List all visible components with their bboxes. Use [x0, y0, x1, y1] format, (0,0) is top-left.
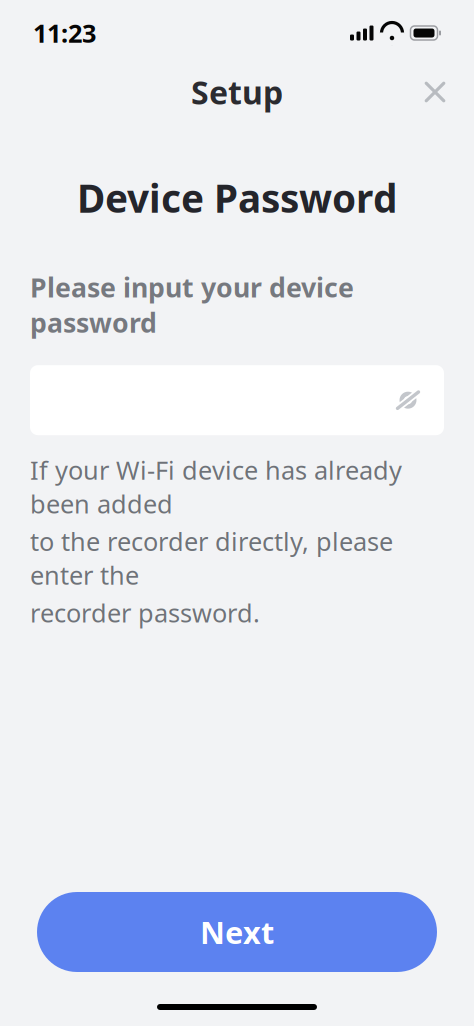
- staticText: 11:23: [33, 16, 96, 50]
- staticText: recorder password.: [30, 596, 260, 629]
- staticText: Device Password: [77, 172, 397, 223]
- staticText: Please input your device password: [30, 269, 354, 340]
- staticText: If your Wi-Fi device has already been ad…: [30, 453, 402, 520]
- staticText: Next: [200, 912, 274, 952]
- staticText: Setup: [191, 71, 283, 113]
- staticText: to the recorder directly, please enter t…: [30, 524, 393, 592]
- button[interactable]: Close: [409, 66, 461, 118]
- button[interactable]: Show password: [385, 377, 431, 423]
- button[interactable]: Next: [37, 892, 437, 972]
